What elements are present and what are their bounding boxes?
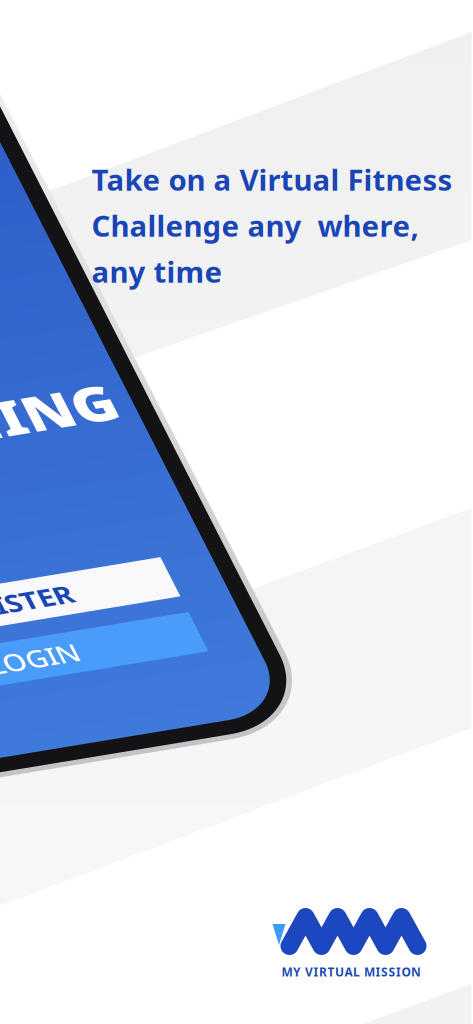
staticText: any time <box>91 252 222 291</box>
button[interactable]: REGISTER <box>69 748 403 798</box>
staticText: MY VIRTUAL MISSION <box>281 964 421 980</box>
button[interactable]: LOGIN <box>69 818 403 868</box>
staticText: Challenge any where, <box>91 206 418 245</box>
staticText: SOMETHING <box>67 515 435 593</box>
staticText: START <box>69 475 177 523</box>
staticText: Take on a Virtual Fitness <box>91 160 452 199</box>
